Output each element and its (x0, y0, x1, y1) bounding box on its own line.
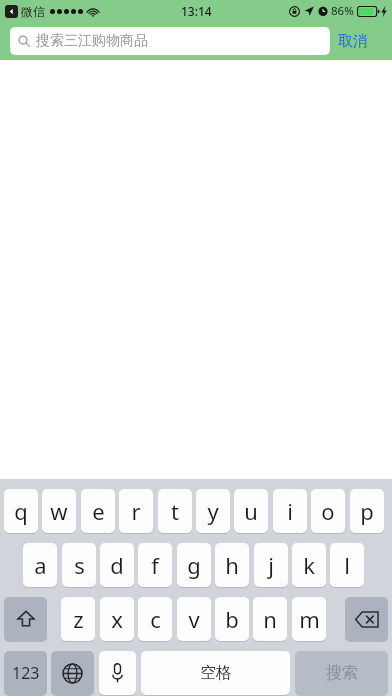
staticText: p (360, 496, 374, 526)
button[interactable]: v (177, 597, 211, 641)
button[interactable]: k (292, 543, 326, 587)
staticText: j (268, 550, 274, 580)
staticText: n (263, 604, 277, 634)
button[interactable]: s (62, 543, 96, 587)
staticText: r (131, 496, 141, 526)
button[interactable]: i (273, 489, 307, 533)
staticText: 搜索三江购物商品 (36, 32, 148, 50)
staticText: g (187, 550, 201, 580)
button[interactable]: x (100, 597, 134, 641)
button[interactable]: b (215, 597, 249, 641)
button[interactable]: j (254, 543, 288, 587)
button[interactable]: y (196, 489, 230, 533)
staticText: i (287, 496, 293, 526)
staticText: q (14, 496, 28, 526)
staticText: w (50, 496, 68, 526)
button[interactable]: h (215, 543, 249, 587)
button[interactable]: o (311, 489, 345, 533)
button[interactable]: Switch keyboard language (51, 651, 94, 695)
button[interactable]: e (81, 489, 115, 533)
staticText: b (225, 604, 239, 634)
button[interactable]: u (234, 489, 268, 533)
button[interactable]: f (138, 543, 172, 587)
button[interactable]: d (100, 543, 134, 587)
staticText: x (111, 604, 123, 634)
button[interactable]: m (292, 597, 326, 641)
staticText: 搜索 (326, 663, 358, 683)
staticText: d (110, 550, 124, 580)
staticText: f (151, 550, 159, 580)
button[interactable]: Back (5, 5, 18, 18)
staticText: l (344, 550, 350, 580)
staticText: e (92, 496, 105, 526)
staticText: 微信 (21, 4, 45, 19)
staticText: o (321, 496, 335, 526)
button[interactable]: 搜索三江购物商品 (10, 27, 330, 55)
button[interactable]: Delete (345, 597, 388, 641)
staticText: a (34, 550, 47, 580)
staticText: s (74, 550, 85, 580)
button[interactable]: Shift (4, 597, 47, 641)
staticText: 86% (331, 3, 354, 19)
button[interactable]: q (4, 489, 38, 533)
button[interactable]: 空格 (141, 651, 290, 695)
button[interactable]: 123 (4, 651, 47, 695)
staticText: 13:14 (181, 3, 212, 19)
button[interactable]: t (158, 489, 192, 533)
staticText: 取消 (338, 32, 368, 51)
staticText: z (73, 604, 84, 634)
staticText: v (188, 604, 200, 634)
staticText: 空格 (200, 663, 232, 683)
button[interactable]: n (253, 597, 287, 641)
staticText: h (225, 550, 239, 580)
staticText: 123 (12, 662, 40, 684)
button[interactable]: 搜索 (295, 651, 388, 695)
button[interactable]: g (177, 543, 211, 587)
staticText: t (171, 496, 179, 526)
button[interactable]: c (138, 597, 172, 641)
button[interactable]: Voice input (99, 651, 136, 695)
staticText: u (244, 496, 258, 526)
button[interactable]: z (61, 597, 95, 641)
staticText: k (303, 550, 315, 580)
button[interactable]: l (330, 543, 364, 587)
button[interactable]: r (119, 489, 153, 533)
staticText: m (299, 604, 320, 634)
staticText: y (207, 496, 219, 526)
button[interactable]: 取消 (338, 22, 368, 60)
button[interactable]: w (42, 489, 76, 533)
button[interactable]: p (350, 489, 384, 533)
staticText: c (150, 604, 161, 634)
button[interactable]: a (23, 543, 57, 587)
